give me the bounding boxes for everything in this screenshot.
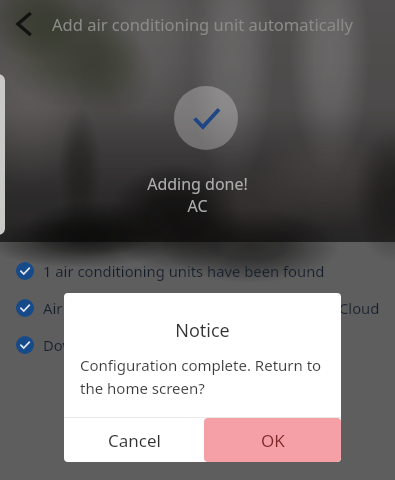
staticText: Air conditioning unit is registered with… (43, 298, 380, 318)
button[interactable]: Air conditioning unit is registered with… (0, 289, 395, 326)
staticText: Notice (64, 318, 341, 343)
staticText: Adding done! (147, 173, 248, 195)
button[interactable]: Back (0, 0, 48, 48)
staticText: Downloading setting information (43, 335, 274, 355)
staticText: Add air conditioning unit automatically (52, 13, 353, 35)
staticText: 1 air conditioning units have been found (43, 261, 325, 281)
button[interactable]: OK (204, 418, 341, 462)
staticText: Configuration complete. Return to the ho… (80, 355, 325, 398)
staticText: Cancel (108, 429, 161, 452)
staticText: OK (261, 429, 285, 452)
button[interactable]: Downloading setting information (0, 326, 395, 363)
button[interactable]: Cancel (64, 418, 204, 462)
staticText: AC (187, 195, 208, 217)
button[interactable]: 1 air conditioning units have been found (0, 252, 395, 289)
